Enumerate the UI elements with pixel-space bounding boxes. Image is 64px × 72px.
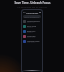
staticText: Search automations [24,16,39,18]
button[interactable]: Morning Routine [23,19,41,24]
staticText: Wind Down [27,35,36,37]
staticText: Weekdays [27,32,34,34]
button[interactable]: Commute Home [23,39,41,44]
staticText: Commute Home [27,40,40,42]
staticText: When leaving [27,42,36,44]
staticText: Deep Work [27,30,36,32]
button[interactable]: Wind Down [23,34,41,39]
staticText: Daily at 22:00 [27,37,36,39]
staticText: Automations [26,12,39,15]
staticText: Save Time. Unleash Focus [14,1,51,5]
button[interactable]: Deep Work [23,29,41,34]
button[interactable]: Focus Mode [23,24,41,29]
staticText: Daily at 7:00 [27,22,35,24]
staticText: 9:41 [23,11,26,13]
staticText: The automation app for everyone [17,6,47,9]
staticText: Weekdays [27,27,34,29]
staticText: Morning Routine [27,20,40,22]
staticText: Focus Mode [27,25,37,27]
button[interactable]: Search automations [23,15,41,18]
